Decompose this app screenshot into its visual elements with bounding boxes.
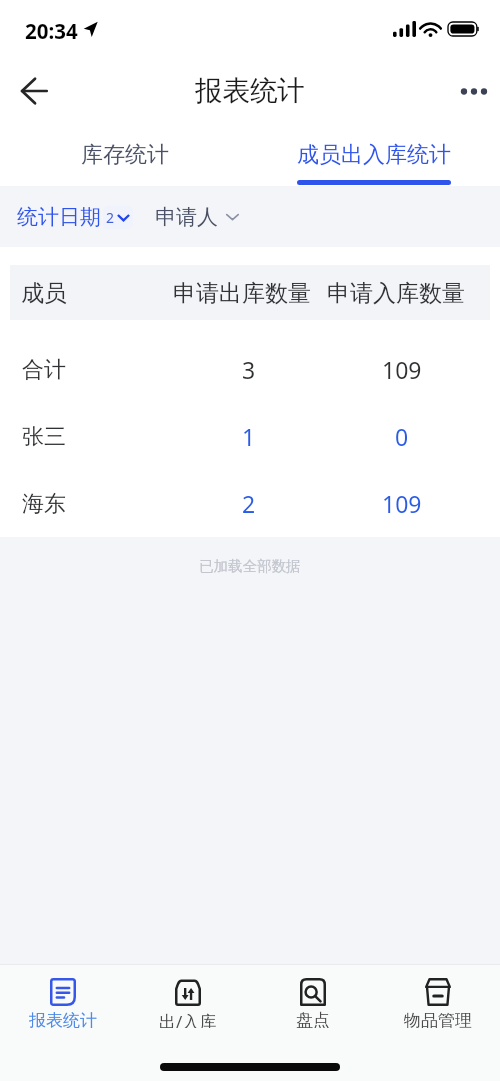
staticText: 3 <box>242 354 256 385</box>
staticText: 2 <box>106 208 115 227</box>
button[interactable]: 物品管理 <box>375 965 500 1028</box>
staticText: 0 <box>395 421 409 452</box>
button[interactable]: Back <box>10 67 58 115</box>
staticText: 成员 <box>21 279 67 308</box>
button[interactable]: 统计日期 <box>17 204 133 230</box>
button[interactable]: 报表统计 <box>0 965 125 1028</box>
button[interactable]: 出/入库 <box>125 965 250 1028</box>
staticText: 统计日期 <box>17 204 101 230</box>
staticText: 物品管理 <box>404 1010 472 1028</box>
button[interactable]: 库存统计 <box>26 125 223 186</box>
button[interactable]: 申请人 <box>155 204 239 230</box>
staticText: 申请入库数量 <box>327 279 465 308</box>
staticText: 2 <box>242 488 256 519</box>
staticText: 109 <box>382 354 422 385</box>
button[interactable]: 张三 <box>0 403 500 470</box>
staticText: 报表统计 <box>195 74 305 109</box>
button[interactable]: 海东 <box>0 470 500 537</box>
button[interactable]: 成员出入库统计 <box>276 125 471 186</box>
staticText: 报表统计 <box>29 1010 97 1028</box>
button[interactable]: 盘点 <box>250 965 375 1028</box>
button[interactable]: 合计 <box>0 336 500 403</box>
staticText: 出/入库 <box>159 1010 217 1028</box>
staticText: 成员出入库统计 <box>297 141 451 169</box>
staticText: 已加载全部数据 <box>199 557 301 575</box>
staticText: 109 <box>382 488 422 519</box>
staticText: 合计 <box>22 356 66 384</box>
staticText: 20:34 <box>25 17 78 45</box>
staticText: 申请人 <box>155 204 218 230</box>
staticText: 申请出库数量 <box>173 279 311 308</box>
staticText: 库存统计 <box>81 141 169 169</box>
staticText: 盘点 <box>296 1010 330 1028</box>
staticText: 1 <box>242 421 256 452</box>
staticText: 张三 <box>22 423 66 451</box>
button[interactable]: More options <box>450 67 498 115</box>
staticText: 海东 <box>22 490 66 518</box>
